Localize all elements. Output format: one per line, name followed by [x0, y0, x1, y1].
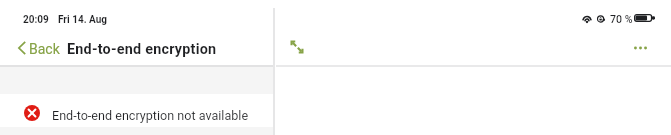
staticText: Fri 14. Aug: [58, 14, 108, 26]
button[interactable]: End-to-end encryption not available: [0, 94, 274, 127]
staticText: End-to-end encryption not available: [52, 108, 249, 123]
button[interactable]: More options: [626, 33, 655, 62]
staticText: 70 %: [610, 13, 633, 25]
staticText: 20:09: [23, 14, 49, 26]
staticText: End-to-end encryption: [67, 41, 217, 58]
button[interactable]: Back: [0, 34, 60, 62]
button[interactable]: Expand: [282, 32, 312, 62]
staticText: Back: [29, 41, 60, 57]
